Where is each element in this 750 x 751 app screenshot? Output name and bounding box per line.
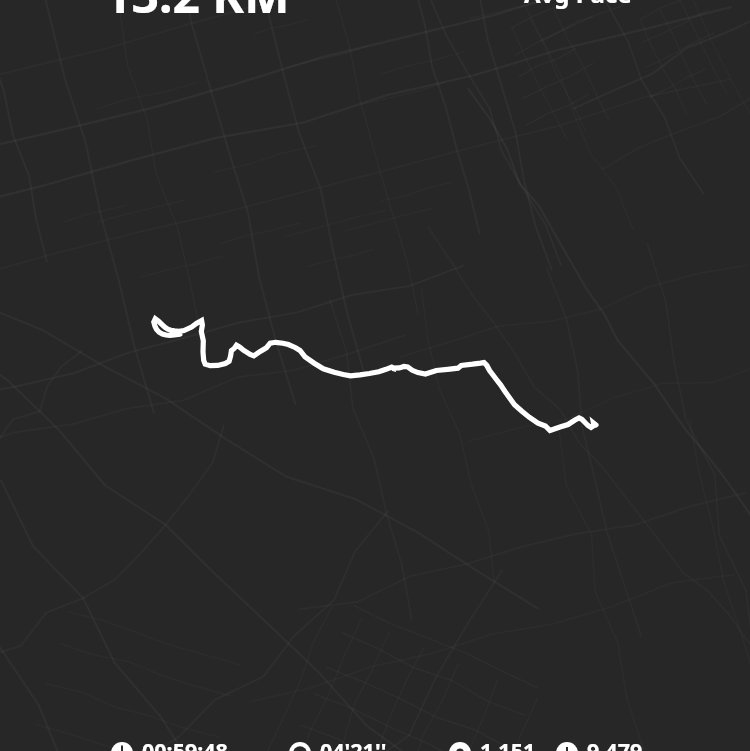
staticText: 04'21'' [320, 736, 387, 751]
button[interactable]: Calories [449, 736, 536, 751]
staticText: 1.151 [480, 736, 536, 751]
button[interactable]: 13.2 KM [104, 0, 290, 27]
staticText: 9.479 [587, 736, 643, 751]
button[interactable]: Duration [111, 736, 228, 751]
button[interactable]: Average pace [289, 736, 387, 751]
staticText: 00:59:48 [142, 736, 228, 751]
button[interactable]: Avg Pace [524, 0, 632, 10]
button[interactable]: Steps [556, 736, 643, 751]
